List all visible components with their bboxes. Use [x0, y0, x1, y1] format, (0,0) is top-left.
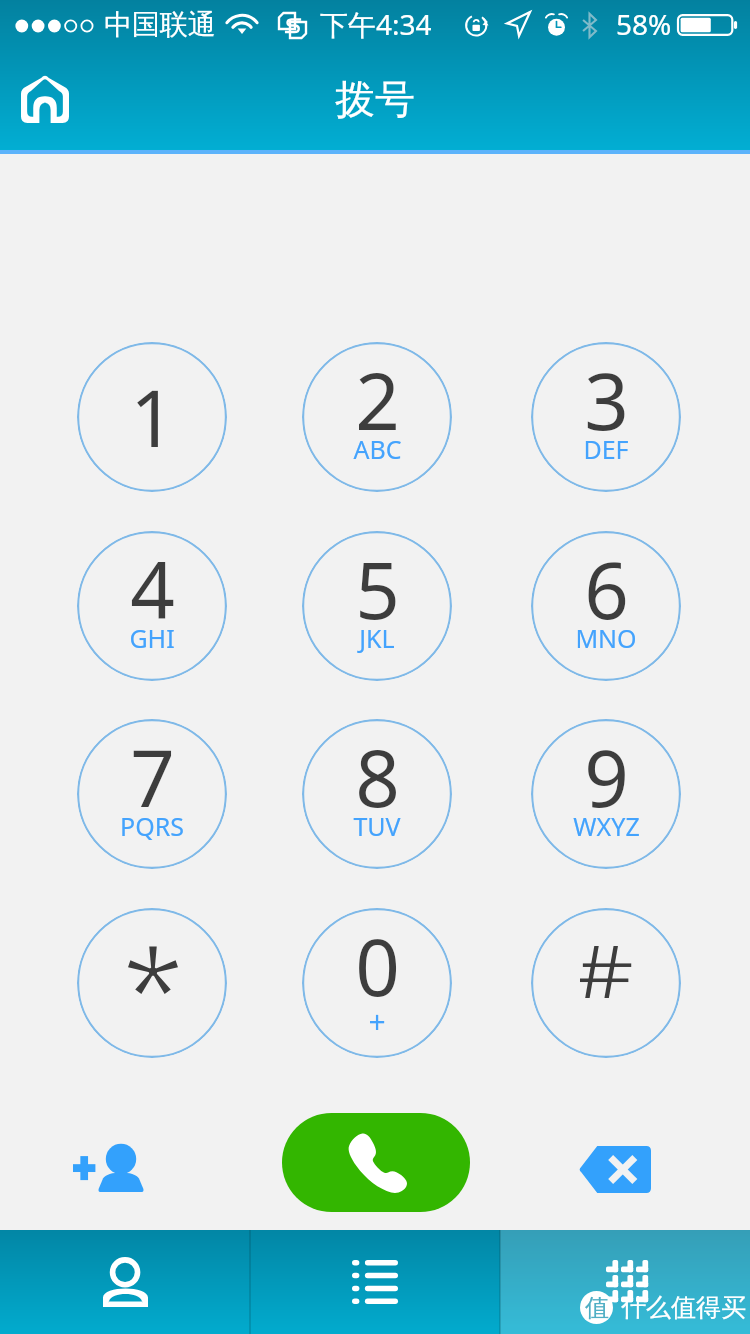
- staticText: ABC: [353, 432, 402, 466]
- staticText: 9: [584, 724, 629, 830]
- button[interactable]: Contacts: [0, 1230, 250, 1334]
- staticText: MNO: [575, 621, 637, 655]
- staticText: DEF: [583, 432, 629, 466]
- staticText: +: [368, 1001, 386, 1042]
- staticText: 4: [130, 536, 175, 642]
- staticText: JKL: [359, 621, 395, 655]
- button[interactable]: Backspace: [546, 1113, 686, 1212]
- button[interactable]: 0: [302, 908, 452, 1058]
- staticText: 6: [584, 536, 629, 642]
- staticText: 0: [355, 913, 400, 1019]
- button[interactable]: 4: [77, 531, 227, 681]
- staticText: WXYZ: [573, 809, 640, 843]
- staticText: 3: [584, 347, 629, 453]
- button[interactable]: 8: [302, 719, 452, 869]
- button[interactable]: Dialpad: [500, 1230, 750, 1334]
- button[interactable]: 1: [77, 342, 227, 492]
- button[interactable]: 2: [302, 342, 452, 492]
- staticText: 值: [585, 1293, 609, 1323]
- button[interactable]: 5: [302, 531, 452, 681]
- button[interactable]: 7: [77, 719, 227, 869]
- staticText: GHI: [129, 621, 175, 655]
- staticText: 1: [130, 364, 175, 470]
- staticText: 7: [130, 724, 175, 830]
- staticText: 什么值得买: [621, 1292, 746, 1323]
- staticText: 58%: [616, 5, 672, 43]
- staticText: PQRS: [120, 809, 184, 843]
- staticText: 2: [355, 347, 400, 453]
- button[interactable]: Call log: [250, 1230, 500, 1334]
- button[interactable]: [531, 908, 681, 1058]
- staticText: 8: [355, 724, 400, 830]
- button[interactable]: 9: [531, 719, 681, 869]
- staticText: 下午4:34: [320, 5, 432, 43]
- staticText: 5: [355, 536, 400, 642]
- staticText: 中国联通: [104, 7, 216, 42]
- button[interactable]: Home: [12, 66, 78, 132]
- button[interactable]: 6: [531, 531, 681, 681]
- staticText: TUV: [353, 809, 401, 843]
- button[interactable]: [77, 908, 227, 1058]
- button[interactable]: Add contact: [38, 1113, 178, 1212]
- button[interactable]: Call: [282, 1113, 470, 1212]
- button[interactable]: 3: [531, 342, 681, 492]
- staticText: 拨号: [335, 74, 415, 124]
